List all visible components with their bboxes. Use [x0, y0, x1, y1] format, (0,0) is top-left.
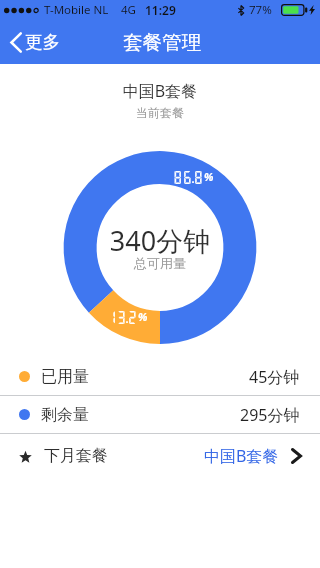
staticText: 340分钟 — [0, 222, 320, 259]
staticText: 86.8 — [173, 169, 204, 184]
staticText: 下月套餐 — [44, 446, 108, 466]
staticText: 295分钟 — [240, 404, 300, 426]
staticText: 中国B套餐 — [0, 80, 320, 102]
staticText: T-Mobile NL — [44, 2, 109, 18]
staticText: 更多 — [25, 31, 60, 53]
staticText: 剩余量 — [41, 405, 89, 425]
staticText: % — [204, 169, 214, 184]
staticText: 中国B套餐 — [204, 445, 279, 467]
staticText: 总可用量 — [0, 255, 320, 271]
staticText: 当前套餐 — [0, 105, 320, 120]
staticText: 套餐管理 — [123, 30, 201, 55]
button[interactable]: 已用量 — [0, 358, 320, 395]
button[interactable]: 更多 — [0, 25, 74, 59]
staticText: 已用量 — [41, 367, 89, 387]
staticText: 77% — [249, 2, 272, 18]
button[interactable]: 下月套餐 — [0, 434, 320, 478]
staticText: % — [138, 309, 148, 324]
staticText: 45分钟 — [249, 366, 300, 388]
staticText: 13.2 — [107, 309, 138, 324]
button[interactable]: 剩余量 — [0, 396, 320, 433]
staticText: 4G — [121, 2, 136, 18]
staticText: 11:29 — [145, 2, 176, 18]
